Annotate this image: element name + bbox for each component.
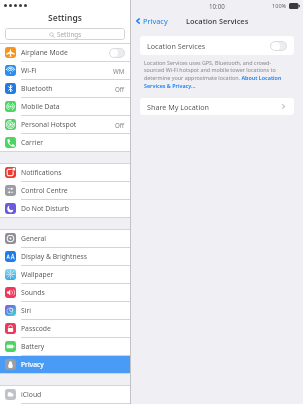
staticText: Control Centre [21, 186, 68, 195]
button[interactable]: Personal Hotspot [0, 116, 130, 133]
button[interactable]: Siri [0, 302, 130, 319]
staticText: General [21, 234, 47, 243]
staticText: Privacy [143, 16, 168, 26]
button[interactable]: Wi-Fi [0, 62, 130, 79]
staticText: Location Services [147, 41, 206, 51]
staticText: Passcode [21, 324, 51, 333]
staticText: Battery [21, 342, 45, 351]
button[interactable]: Location Services toggle, off [270, 41, 287, 51]
staticText: Wallpaper [21, 270, 54, 279]
button[interactable]: Sounds [0, 284, 130, 301]
staticText: Off [115, 121, 125, 129]
staticText: Share My Location [147, 102, 210, 112]
button[interactable]: iCloud [0, 386, 130, 403]
staticText: Sounds [21, 288, 45, 297]
staticText: Do Not Disturb [21, 204, 69, 213]
staticText: Carrier [21, 138, 44, 147]
staticText: Settings [57, 30, 82, 39]
staticText: 10:00 [209, 2, 225, 10]
staticText: Airplane Mode [21, 48, 68, 57]
button[interactable]: Location Services [140, 36, 294, 55]
staticText: Privacy [21, 360, 44, 369]
staticText: Mobile Data [21, 102, 60, 111]
button[interactable]: Privacy [0, 356, 130, 373]
staticText: Wi-Fi [21, 66, 37, 75]
button[interactable]: Display & Brightness [0, 248, 130, 265]
staticText: Location Services [186, 16, 249, 26]
staticText: Notifications [21, 168, 62, 177]
button[interactable]: Search Settings [5, 28, 125, 40]
staticText: Bluetooth [21, 84, 53, 93]
button[interactable]: Notifications [0, 164, 130, 181]
button[interactable]: Airplane Mode [0, 44, 130, 61]
button[interactable]: Mobile Data [0, 98, 130, 115]
staticText: Siri [21, 306, 32, 315]
staticText: Settings [48, 12, 82, 24]
staticText: Personal Hotspot [21, 120, 77, 129]
button[interactable]: Privacy [134, 16, 168, 26]
button[interactable]: General [0, 230, 130, 247]
button[interactable]: Passcode [0, 320, 130, 337]
button[interactable]: Bluetooth [0, 80, 130, 97]
button[interactable]: Airplane Mode toggle, off [109, 48, 125, 58]
button[interactable]: Battery [0, 338, 130, 355]
staticText: Location Services uses GPS, Bluetooth, a… [144, 59, 290, 90]
staticText: Off [115, 85, 125, 93]
button[interactable]: Control Centre [0, 182, 130, 199]
button[interactable]: Share My Location [140, 98, 294, 115]
staticText: Display & Brightness [21, 252, 88, 261]
button[interactable]: Carrier [0, 134, 130, 151]
staticText: WM [113, 67, 125, 75]
button[interactable]: Wallpaper [0, 266, 130, 283]
button[interactable]: Do Not Disturb [0, 200, 130, 217]
staticText: iCloud [21, 390, 42, 399]
staticText: 100% [272, 2, 287, 10]
